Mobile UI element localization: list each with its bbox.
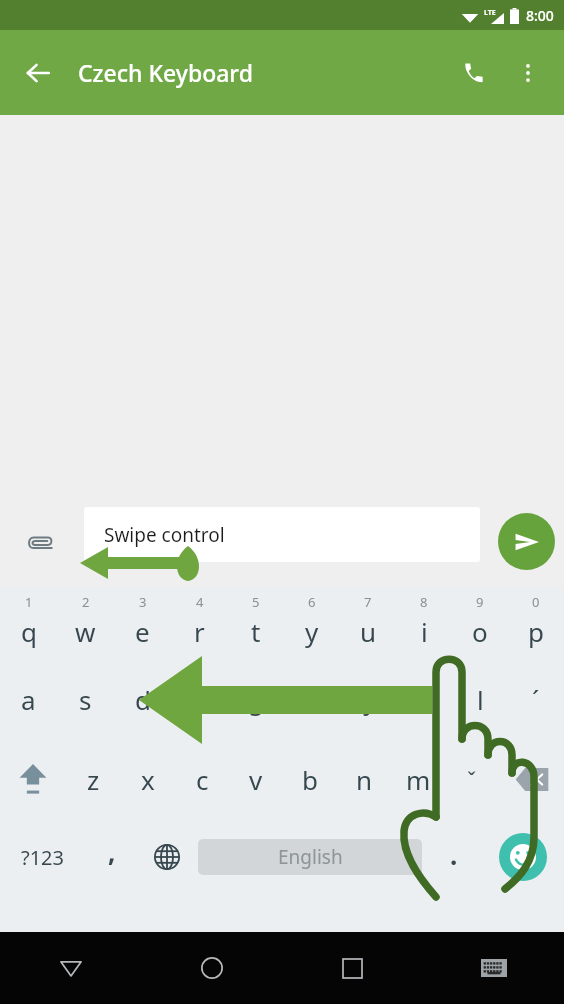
button[interactable]: ?123 (0, 819, 84, 895)
staticText: 5 (252, 593, 260, 611)
button[interactable]: z (66, 739, 121, 819)
staticText: 9 (476, 593, 484, 611)
button[interactable]: Call (452, 51, 496, 95)
staticText: b (302, 762, 318, 797)
staticText: English (278, 844, 343, 870)
button[interactable]: h (284, 659, 340, 739)
staticText: 8 (420, 593, 428, 611)
staticText: ˇ (467, 764, 477, 794)
button[interactable]: s (57, 659, 114, 739)
staticText: p (528, 614, 544, 649)
staticText: q (21, 614, 37, 649)
staticText: 6 (308, 593, 316, 611)
button[interactable]: j (340, 659, 396, 739)
staticText: y (305, 614, 319, 649)
staticText: 3 (139, 593, 147, 611)
button[interactable]: 0 (508, 591, 564, 659)
button[interactable]: m (391, 739, 445, 819)
button[interactable]: Keyboard indicator (423, 932, 564, 1004)
button[interactable]: b (283, 739, 337, 819)
button[interactable]: More options (508, 53, 548, 93)
button[interactable]: g (228, 659, 284, 739)
button[interactable]: 4 (171, 591, 228, 659)
button[interactable]: 2 (57, 591, 114, 659)
staticText: 7 (364, 593, 372, 611)
staticText: h (304, 682, 321, 717)
button[interactable]: Shift (0, 739, 66, 819)
staticText: a (21, 682, 36, 717)
staticText: 8:00 (526, 6, 554, 25)
button[interactable]: Change language (139, 819, 194, 895)
staticText: 2 (82, 593, 90, 611)
staticText: z (87, 762, 100, 797)
button[interactable]: English (198, 839, 422, 875)
button[interactable]: x (121, 739, 175, 819)
button[interactable]: c (175, 739, 229, 819)
staticText: x (141, 762, 155, 797)
staticText: s (79, 682, 92, 717)
button[interactable]: Recent apps (282, 932, 423, 1004)
button[interactable]: l (452, 659, 508, 739)
staticText: , (108, 834, 116, 869)
staticText: m (406, 762, 431, 797)
staticText: ´ (532, 682, 540, 717)
staticText: k (417, 682, 431, 717)
staticText: o (472, 614, 488, 649)
button[interactable]: k (396, 659, 452, 739)
button[interactable]: . (426, 819, 481, 895)
button[interactable]: Backspace (499, 739, 564, 819)
button[interactable]: v (229, 739, 283, 819)
staticText: w (75, 614, 96, 649)
staticText: j (365, 682, 372, 717)
button[interactable]: , (84, 819, 139, 895)
staticText: 1 (25, 593, 33, 611)
button[interactable]: Send (498, 513, 555, 570)
button[interactable]: Back (0, 932, 141, 1004)
staticText: g (248, 682, 264, 717)
staticText: 4 (196, 593, 204, 611)
staticText: r (194, 614, 205, 649)
staticText: u (360, 614, 377, 649)
staticText: e (135, 614, 150, 649)
button[interactable]: ˇ (445, 739, 499, 819)
staticText: ?123 (21, 844, 64, 871)
button[interactable]: 6 (284, 591, 340, 659)
button[interactable]: d (114, 659, 171, 739)
staticText: i (421, 614, 428, 649)
button[interactable]: Home (141, 932, 282, 1004)
button[interactable]: 7 (340, 591, 396, 659)
button[interactable]: Swipe control (84, 507, 480, 562)
button[interactable]: Emoji (499, 833, 547, 881)
staticText: . (450, 837, 458, 872)
button[interactable]: 5 (228, 591, 284, 659)
button[interactable]: Attach (20, 523, 60, 563)
button[interactable]: 8 (396, 591, 452, 659)
staticText: LTE (484, 8, 496, 18)
staticText: t (251, 614, 261, 649)
button[interactable]: 3 (114, 591, 171, 659)
button[interactable]: n (337, 739, 391, 819)
staticText: v (249, 762, 263, 797)
button[interactable]: f (171, 659, 228, 739)
staticText: n (356, 762, 373, 797)
button[interactable]: 1 (0, 591, 57, 659)
staticText: Swipe control (104, 522, 225, 548)
staticText: 0 (532, 593, 540, 611)
staticText: f (195, 682, 204, 717)
staticText: Czech Keyboard (78, 57, 253, 88)
staticText: l (477, 682, 484, 717)
button[interactable]: 9 (452, 591, 508, 659)
staticText: c (196, 762, 209, 797)
staticText: d (135, 682, 151, 717)
button[interactable]: ´ (508, 659, 564, 739)
button[interactable]: a (0, 659, 57, 739)
button[interactable]: Back (16, 51, 60, 95)
